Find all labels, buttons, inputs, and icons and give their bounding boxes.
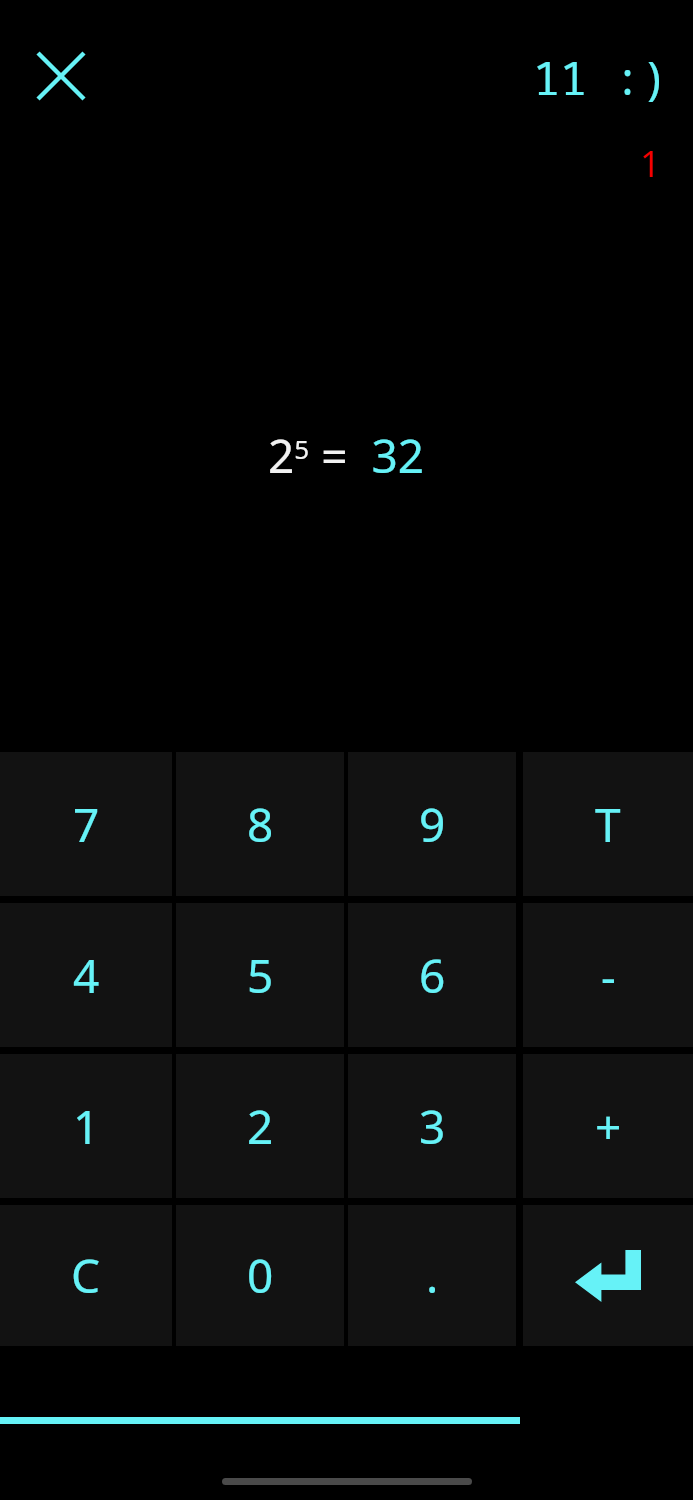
staticText: + <box>595 1095 622 1158</box>
button[interactable]: 3 <box>348 1054 516 1198</box>
button[interactable]: C <box>0 1205 172 1346</box>
button[interactable]: Close <box>24 39 98 113</box>
staticText: 1 <box>640 139 661 187</box>
button[interactable]: + <box>523 1054 693 1198</box>
button[interactable]: 4 <box>0 903 172 1047</box>
button[interactable]: 11 :) <box>493 46 669 108</box>
staticText: 3 <box>419 1095 446 1158</box>
button[interactable]: 1 <box>0 1054 172 1198</box>
staticText: 7 <box>73 793 100 856</box>
staticText: C <box>71 1244 101 1307</box>
button[interactable]: 2 <box>176 1054 344 1198</box>
staticText: 4 <box>73 944 100 1007</box>
button[interactable]: 6 <box>348 903 516 1047</box>
staticText: 5 <box>247 944 274 1007</box>
staticText: 2 <box>247 1095 274 1158</box>
staticText: T <box>595 793 621 856</box>
staticText: . <box>426 1244 439 1307</box>
staticText: 6 <box>419 944 446 1007</box>
staticText: - <box>601 944 616 1007</box>
staticText: 25 = 32 <box>268 424 425 487</box>
staticText: 8 <box>247 793 274 856</box>
button[interactable]: 5 <box>176 903 344 1047</box>
button[interactable]: 9 <box>348 752 516 896</box>
button[interactable]: T <box>523 752 693 896</box>
button[interactable]: Enter <box>523 1205 693 1346</box>
button[interactable]: - <box>523 903 693 1047</box>
staticText: 11 :) <box>533 47 669 108</box>
button[interactable]: . <box>348 1205 516 1346</box>
staticText: 1 <box>73 1095 100 1158</box>
button[interactable]: 7 <box>0 752 172 896</box>
button[interactable]: 8 <box>176 752 344 896</box>
staticText: 9 <box>419 793 446 856</box>
button[interactable]: 0 <box>176 1205 344 1346</box>
staticText: 0 <box>247 1244 274 1307</box>
